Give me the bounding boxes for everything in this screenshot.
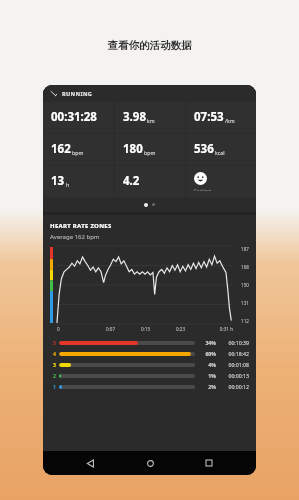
staticText: 4	[50, 350, 59, 357]
button[interactable]: Back	[77, 451, 103, 475]
staticText: 3.98	[123, 109, 146, 125]
staticText: 07:53	[194, 109, 224, 125]
staticText: 00:01:08	[219, 361, 249, 368]
staticText: bpm	[72, 149, 84, 156]
staticText: 1	[50, 383, 59, 390]
staticText: 0:23	[163, 326, 198, 332]
staticText: RUNNING	[62, 90, 93, 98]
button[interactable]: Recents	[196, 451, 222, 475]
staticText: 4.2	[123, 173, 140, 189]
staticText: 3	[50, 361, 59, 368]
staticText: 0:15	[128, 326, 163, 332]
staticText: bpm	[144, 149, 156, 156]
staticText: 0	[57, 326, 93, 332]
staticText: 162	[51, 141, 71, 157]
staticText: 180	[123, 141, 143, 157]
staticText: 00:18:42	[219, 350, 249, 357]
staticText: 34%	[195, 339, 216, 346]
staticText: 150	[241, 282, 249, 288]
staticText: 13	[51, 173, 65, 189]
staticText: 00:00:12	[219, 383, 249, 390]
staticText: 168	[241, 264, 249, 270]
staticText: km	[147, 117, 155, 124]
button[interactable]: 3.98	[115, 102, 185, 133]
button[interactable]: Home	[137, 451, 163, 475]
staticText: 187	[241, 246, 249, 252]
button[interactable]: 4	[50, 348, 249, 359]
button[interactable]: 4.2	[115, 166, 185, 197]
staticText: Feeling	[194, 188, 211, 191]
button[interactable]: 07:53	[186, 102, 256, 133]
button[interactable]: 162	[43, 134, 114, 165]
staticText: 2	[50, 372, 59, 379]
button[interactable]: 180	[115, 134, 185, 165]
staticText: 1%	[195, 372, 216, 379]
staticText: 00:31:28	[51, 109, 97, 125]
staticText: 4%	[195, 361, 216, 368]
staticText: 查看你的活动数据	[0, 39, 299, 52]
staticText: /km	[225, 117, 235, 124]
button[interactable]: 1	[50, 381, 249, 392]
button[interactable]: 5	[50, 337, 249, 348]
button[interactable]: 2	[50, 370, 249, 381]
staticText: 5	[50, 339, 59, 346]
staticText: Average 162 bpm	[50, 233, 100, 241]
button[interactable]: RUNNING	[43, 85, 256, 102]
staticText: 536	[194, 141, 214, 157]
staticText: 60%	[195, 350, 216, 357]
staticText: h	[66, 181, 70, 188]
staticText: 0:07	[93, 326, 128, 332]
staticText: 112	[241, 318, 249, 324]
button[interactable]: 3	[50, 359, 249, 370]
staticText: 2%	[195, 383, 216, 390]
staticText: 131	[241, 300, 249, 306]
staticText: 00:00:13	[219, 372, 249, 379]
staticText: kcal	[215, 149, 225, 156]
button[interactable]: 00:31:28	[43, 102, 114, 133]
button[interactable]: 13	[43, 166, 114, 197]
button[interactable]: 536	[186, 134, 256, 165]
button[interactable]: Feeling	[186, 166, 256, 197]
staticText: 0:31 h	[198, 326, 233, 332]
staticText: 00:10:39	[219, 339, 249, 346]
staticText: HEART RATE ZONES	[50, 222, 112, 230]
